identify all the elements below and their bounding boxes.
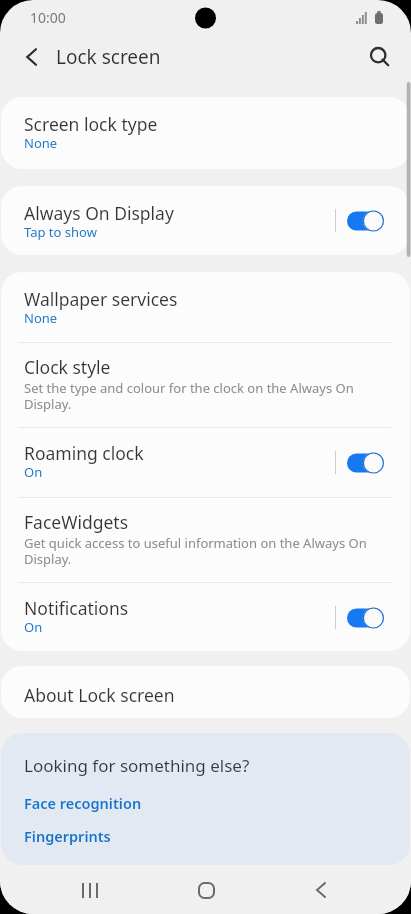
- button[interactable]: Roaming clock: [1, 428, 410, 497]
- staticText: Wallpaper services: [24, 287, 178, 311]
- button[interactable]: Notifications: [1, 583, 410, 651]
- staticText: 10:00: [30, 8, 66, 27]
- staticText: Clock style: [24, 355, 111, 379]
- staticText: None: [24, 309, 58, 327]
- staticText: Face recognition: [24, 793, 142, 813]
- button[interactable]: About Lock screen: [1, 666, 410, 718]
- staticText: On: [24, 618, 43, 636]
- button[interactable]: Fingerprints: [1, 821, 410, 865]
- button[interactable]: Always On Display: [1, 186, 410, 255]
- staticText: On: [24, 463, 43, 481]
- button[interactable]: Wallpaper services: [1, 272, 410, 342]
- button[interactable]: Home: [176, 866, 236, 914]
- staticText: Screen lock type: [24, 112, 158, 136]
- button[interactable]: Back: [291, 866, 351, 914]
- staticText: Lock screen: [56, 44, 161, 70]
- staticText: Set the type and colour for the clock on…: [24, 379, 388, 412]
- staticText: Roaming clock: [24, 441, 144, 465]
- staticText: Tap to show: [24, 223, 97, 241]
- button[interactable]: Recent apps: [60, 866, 120, 914]
- button[interactable]: Clock style: [1, 343, 410, 427]
- staticText: Always On Display: [24, 201, 174, 225]
- staticText: About Lock screen: [24, 683, 175, 707]
- staticText: None: [24, 134, 58, 152]
- button[interactable]: Search: [361, 38, 399, 76]
- staticText: Get quick access to useful information o…: [24, 534, 388, 567]
- staticText: FaceWidgets: [24, 510, 129, 534]
- staticText: Notifications: [24, 596, 129, 620]
- button[interactable]: Screen lock type: [1, 97, 410, 169]
- staticText: Looking for something else?: [24, 754, 250, 777]
- staticText: Fingerprints: [24, 826, 111, 846]
- button[interactable]: Navigate up: [13, 38, 51, 76]
- button[interactable]: FaceWidgets: [1, 498, 410, 582]
- button[interactable]: Face recognition: [1, 788, 410, 821]
